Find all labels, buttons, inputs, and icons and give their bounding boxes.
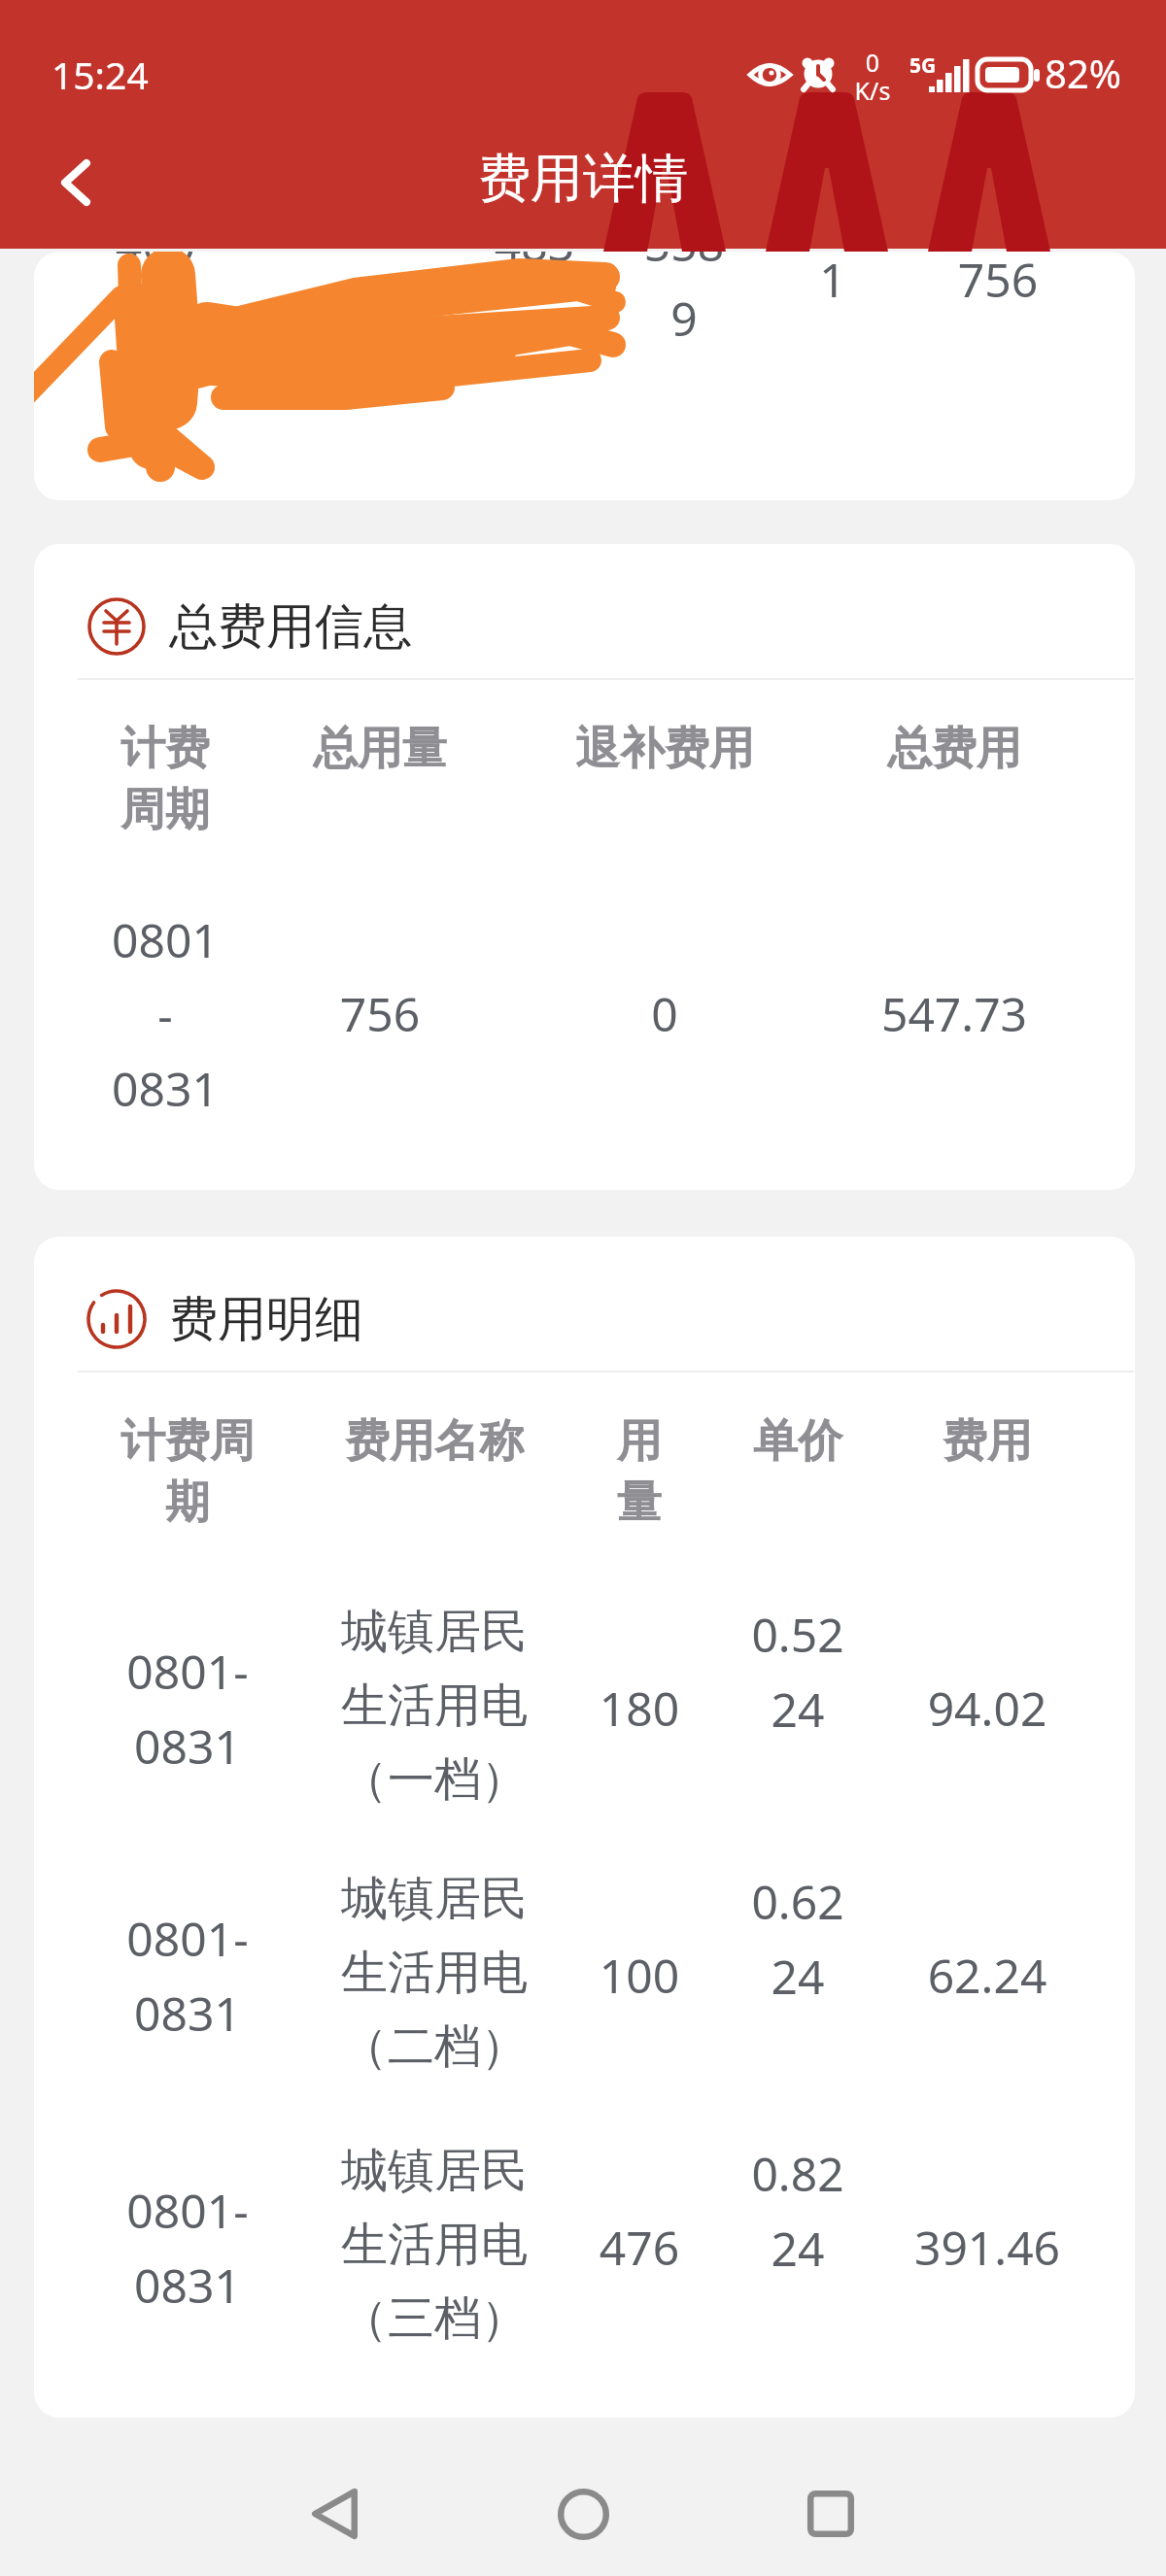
staticText: 退补费用 (519, 721, 810, 777)
staticText: 62.24 (890, 1944, 1084, 2007)
staticText: 0801- 0831 (76, 1907, 299, 2045)
staticText: 0 (855, 46, 890, 79)
staticText: 城镇居民 生活用电 （二档） (313, 1870, 556, 2076)
staticText: 756 (263, 982, 497, 1045)
staticText: 总费用 (838, 721, 1071, 777)
staticText: 费用 (895, 1413, 1080, 1470)
staticText: 391.46 (890, 2216, 1084, 2279)
staticText: 城镇居民 生活用电 （一档） (313, 1603, 556, 1809)
staticText: 1 (721, 252, 944, 311)
staticText: 0801- 0831 (76, 2179, 299, 2317)
staticText: 0.82 24 (715, 2142, 880, 2280)
button[interactable]: Recent apps (768, 2451, 894, 2576)
staticText: - (237, 252, 461, 275)
button[interactable]: Back (32, 139, 120, 226)
staticText: 100 (571, 1944, 707, 2007)
staticText: 94.02 (890, 1677, 1084, 1740)
staticText: 单价 (715, 1413, 880, 1470)
staticText: 费用详情 (478, 146, 688, 212)
staticText: K/s (849, 74, 896, 107)
staticText: 756 (886, 252, 1110, 311)
staticText: 400 (44, 252, 267, 275)
staticText: 558 9 (572, 252, 796, 350)
staticText: 0.52 24 (715, 1603, 880, 1741)
staticText: 费用名称 (323, 1413, 546, 1470)
staticText: 费用明细 (169, 1289, 363, 1350)
button[interactable]: Home (520, 2451, 646, 2576)
staticText: 计费周 期 (76, 1413, 299, 1531)
staticText: 0 (548, 982, 781, 1045)
staticText: 15:24 (51, 49, 149, 100)
staticText: 计费 周期 (78, 721, 253, 838)
staticText: 82% (1045, 47, 1121, 99)
button[interactable]: Back (272, 2451, 398, 2576)
staticText: 0.62 24 (715, 1870, 880, 2008)
staticText: 0801- 0831 (76, 1640, 299, 1778)
staticText: 476 (571, 2216, 707, 2279)
staticText: 0801 - 0831 (49, 908, 282, 1120)
staticText: 总费用信息 (169, 596, 412, 658)
staticText: 总用量 (263, 721, 497, 777)
staticText: 547.73 (838, 982, 1071, 1045)
staticText: 180 (571, 1677, 707, 1740)
staticText: 用 量 (581, 1413, 698, 1531)
staticText: 城镇居民 生活用电 （三档） (313, 2142, 556, 2348)
staticText: 483 (423, 252, 646, 275)
staticText: 5G (909, 51, 948, 80)
